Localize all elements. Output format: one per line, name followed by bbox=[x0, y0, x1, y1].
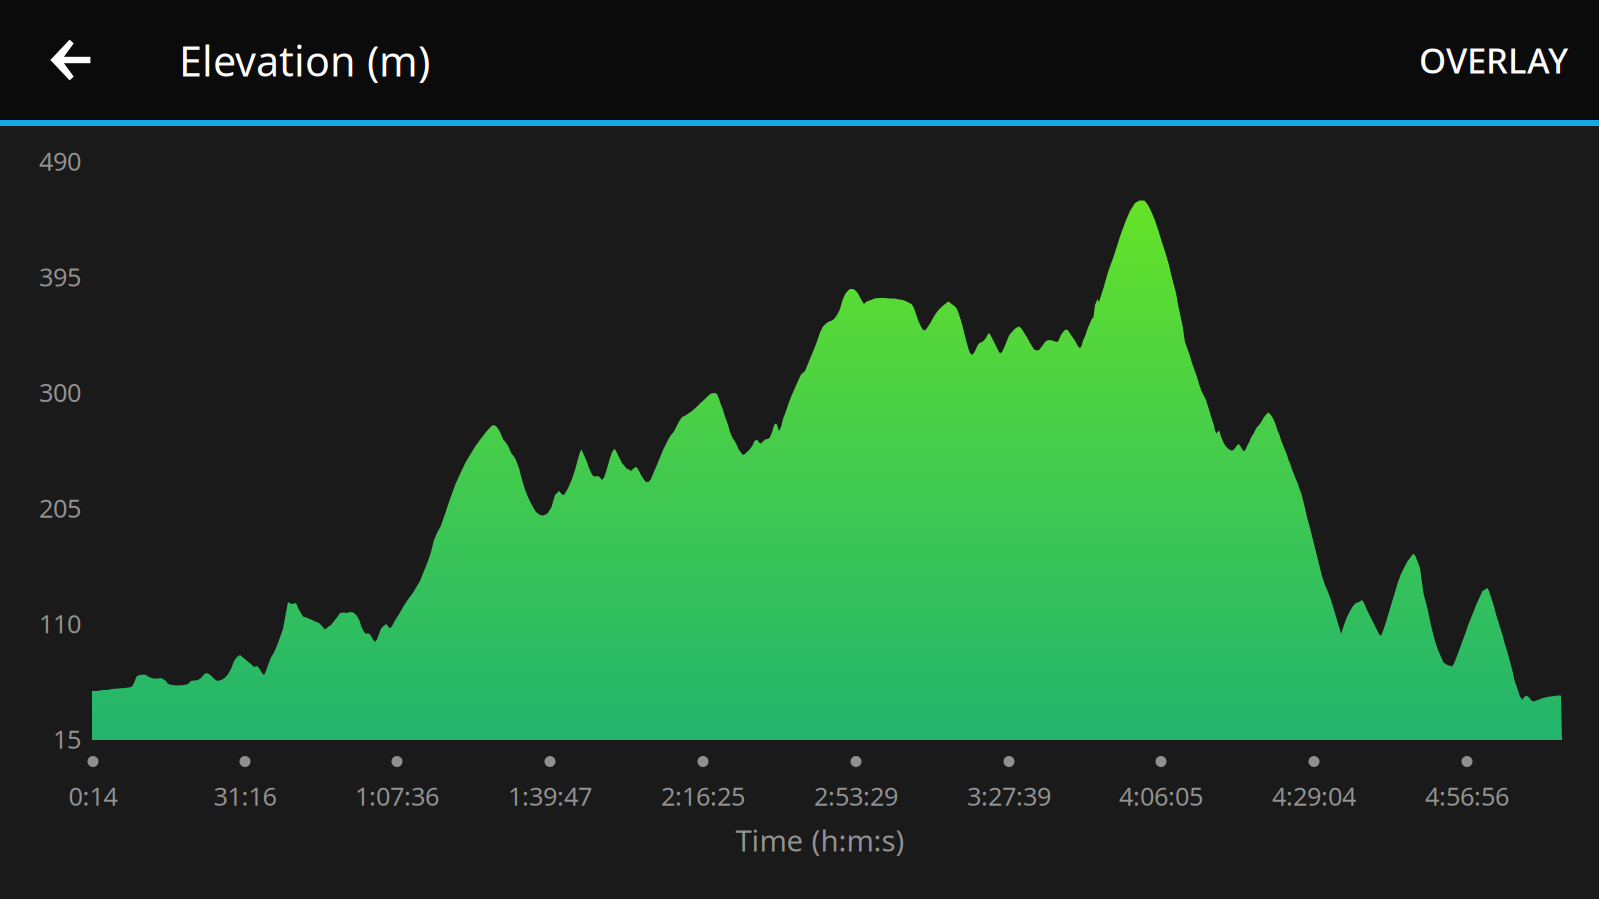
staticText: 110 bbox=[39, 607, 81, 640]
staticText: 4:56:56 bbox=[1425, 779, 1509, 813]
staticText: 205 bbox=[39, 491, 81, 525]
staticText: 395 bbox=[39, 260, 81, 293]
staticText: 3:27:39 bbox=[967, 779, 1051, 813]
staticText: 4:29:04 bbox=[1272, 779, 1356, 813]
button[interactable]: Back bbox=[0, 0, 140, 120]
staticText: 31:16 bbox=[213, 779, 276, 813]
staticText: 490 bbox=[39, 144, 81, 178]
staticText: 2:53:29 bbox=[814, 779, 898, 813]
button[interactable]: OVERLAY bbox=[1308, 0, 1568, 120]
staticText: 1:39:47 bbox=[508, 779, 592, 813]
staticText: 0:14 bbox=[68, 779, 117, 813]
staticText: OVERLAY bbox=[1419, 37, 1568, 83]
staticText: 300 bbox=[39, 375, 81, 409]
staticText: 4:06:05 bbox=[1119, 779, 1203, 813]
staticText: 15 bbox=[53, 722, 81, 756]
staticText: 1:07:36 bbox=[355, 779, 439, 813]
staticText: 2:16:25 bbox=[661, 779, 745, 813]
staticText: Time (h:m:s) bbox=[735, 820, 904, 859]
staticText: Elevation (m) bbox=[179, 33, 430, 88]
